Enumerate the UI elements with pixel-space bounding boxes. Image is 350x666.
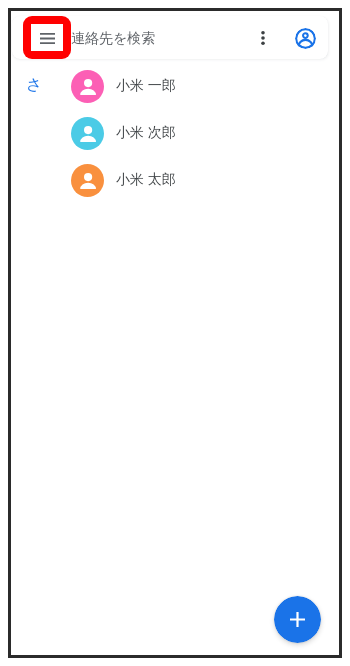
button[interactable]: Create contact xyxy=(274,596,321,643)
staticText: 連絡先を検索 xyxy=(71,30,156,48)
button[interactable]: 小米 一郎 xyxy=(11,63,339,110)
button[interactable]: More options xyxy=(246,21,280,55)
button[interactable]: 小米 太郎 xyxy=(11,157,339,204)
button[interactable]: Account xyxy=(289,22,321,54)
staticText: 小米 一郎 xyxy=(116,75,176,94)
staticText: 小米 太郎 xyxy=(116,169,176,188)
staticText: さ xyxy=(26,75,43,95)
staticText: 小米 次郎 xyxy=(116,122,176,141)
button[interactable]: 連絡先を検索 xyxy=(71,16,255,59)
button[interactable]: Open navigation drawer xyxy=(23,16,71,59)
button[interactable]: 小米 次郎 xyxy=(11,110,339,157)
